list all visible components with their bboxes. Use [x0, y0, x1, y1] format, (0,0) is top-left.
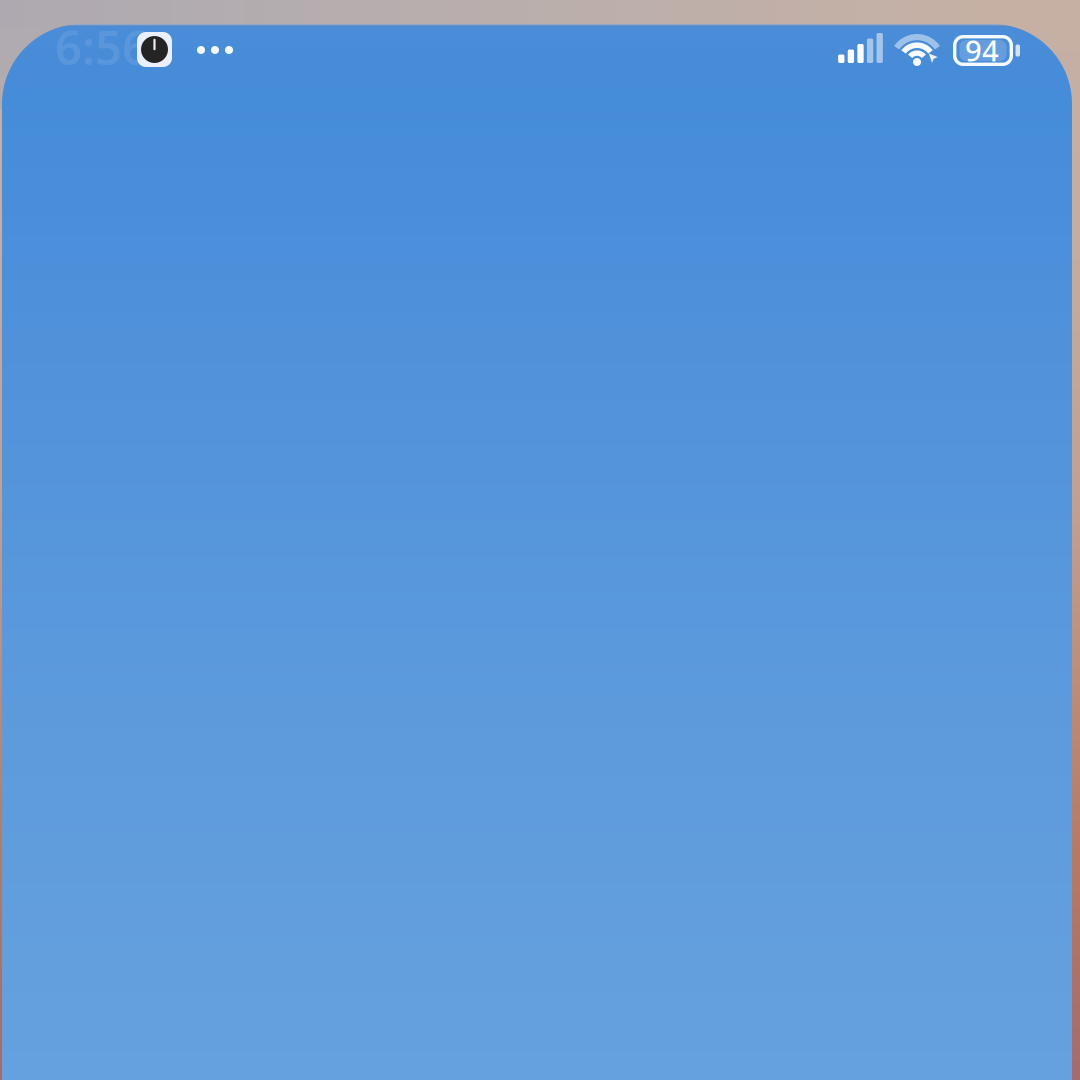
button[interactable]: More Live Activities [197, 46, 233, 54]
staticText: 6:56 [55, 16, 149, 78]
button[interactable]: Clock timer Live Activity [137, 32, 172, 67]
staticText: 94 [965, 30, 999, 69]
